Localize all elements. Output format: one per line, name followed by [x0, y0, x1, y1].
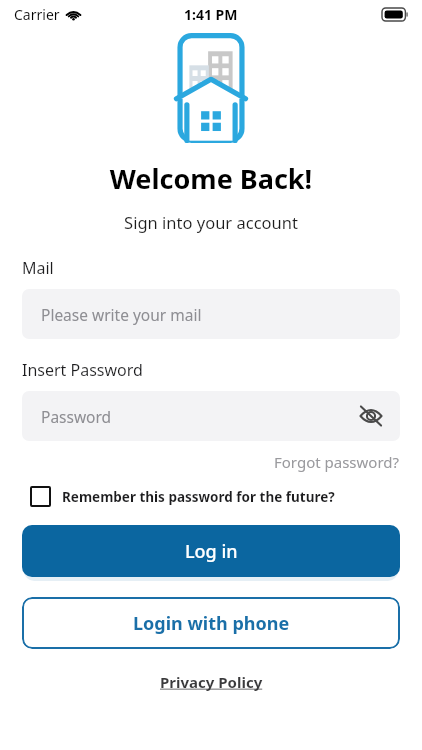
- button[interactable]: Password: [22, 391, 400, 441]
- button[interactable]: Log in: [22, 525, 400, 577]
- staticText: Please write your mail: [41, 304, 202, 325]
- button[interactable]: Forgot password?: [274, 452, 400, 472]
- staticText: Insert Password: [22, 359, 143, 381]
- staticText: Log in: [185, 539, 238, 564]
- staticText: Remember this password for the future?: [62, 488, 335, 506]
- button[interactable]: Login with phone: [22, 597, 400, 649]
- button[interactable]: Remember this password for the future?: [30, 486, 335, 507]
- staticText: Login with phone: [133, 611, 290, 636]
- button[interactable]: Please write your mail: [22, 289, 400, 339]
- staticText: Privacy Policy: [160, 672, 263, 692]
- staticText: Password: [41, 406, 112, 427]
- staticText: Mail: [22, 257, 54, 279]
- staticText: 1:41 PM: [184, 5, 238, 24]
- staticText: Sign into your account: [0, 211, 422, 233]
- staticText: Welcome Back!: [0, 160, 422, 197]
- staticText: Carrier: [14, 5, 60, 24]
- button[interactable]: Show password: [356, 401, 386, 431]
- staticText: Forgot password?: [274, 452, 400, 472]
- button[interactable]: Privacy Policy: [160, 672, 263, 692]
